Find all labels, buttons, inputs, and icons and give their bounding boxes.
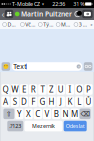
staticText: A [3,96,8,107]
staticText: S [13,96,17,107]
staticText: R [31,84,36,95]
staticText: Text [13,62,26,71]
button[interactable]: D [20,96,28,107]
staticText: H [49,96,55,107]
staticText: W [11,84,18,95]
button[interactable]: J [57,96,65,107]
staticText: Týden [43,21,53,28]
staticText: Z [49,84,54,95]
button[interactable]: P [84,84,93,95]
button[interactable]: Conversations [1,8,13,20]
staticText: Martin Pultzner [21,10,72,18]
button[interactable]: E [20,84,28,95]
button[interactable]: H [47,96,56,107]
staticText: L [77,96,81,107]
staticText: Měsíc [61,21,71,28]
staticText: ⌫ [81,110,90,118]
button[interactable]: I [66,84,74,95]
staticText: J [60,96,62,107]
button[interactable]: .?123 [7,121,23,131]
staticText: Ů [85,96,91,107]
button[interactable]: Stickers [84,62,92,71]
staticText: T-Mobile CZ [11,0,40,8]
staticText: ⇧ [6,110,12,118]
button[interactable]: Y [15,109,24,119]
staticText: U [58,84,64,95]
button[interactable]: ⌫ [80,109,91,119]
button[interactable]: W [11,84,19,95]
button[interactable]: Včera [19,20,37,29]
button[interactable]: Dnes [1,20,19,29]
button[interactable]: L [75,96,83,107]
staticText: × [78,64,80,69]
staticText: Dnes [7,21,18,28]
staticText: Q [3,84,9,95]
staticText: 3 měs [79,21,89,28]
button[interactable]: T [38,84,47,95]
button[interactable]: O [75,84,83,95]
button[interactable]: A [1,96,10,107]
button[interactable]: Silent mode [74,10,81,18]
staticText: G [39,96,45,107]
button[interactable]: ⇧ [3,109,14,119]
button[interactable]: K [66,96,74,107]
button[interactable]: U [57,84,65,95]
staticText: T [40,84,44,95]
button[interactable]: N [61,109,70,119]
staticText: P [86,84,91,95]
button[interactable]: F [29,96,37,107]
button[interactable]: S [11,96,19,107]
button[interactable]: Emoji [2,62,10,71]
button[interactable]: V [43,109,51,119]
button[interactable]: Ů [84,96,93,107]
button[interactable]: C [34,109,42,119]
staticText: C [35,108,40,119]
staticText: ‹ [1,8,4,20]
staticText: Odeslat [66,122,85,130]
staticText: B [54,108,59,119]
staticText: ▸ [91,22,93,27]
staticText: V [44,108,49,119]
staticText: X [26,108,31,119]
staticText: 22:36 [52,0,65,8]
button[interactable]: G [38,96,47,107]
staticText: ▾ [40,2,44,6]
staticText: Y [17,108,22,119]
staticText: K [67,96,72,107]
staticText: Včera [25,21,35,28]
button[interactable]: Camera [82,10,93,18]
staticText: N [62,108,68,119]
staticText: F [31,96,35,107]
staticText: M [71,108,78,119]
button[interactable]: Mezerník [24,121,62,131]
button[interactable]: Měsíc [55,20,72,29]
staticText: I [68,84,71,95]
staticText: E [22,84,26,95]
button[interactable]: B [52,109,60,119]
button[interactable]: Odeslat [64,121,87,131]
button[interactable]: Týden [37,20,55,29]
staticText: .?123 [9,122,21,130]
staticText: O [76,84,82,95]
button[interactable]: Z [47,84,56,95]
staticText: D [21,96,27,107]
button[interactable]: 3 měs [73,20,90,29]
staticText: Mezerník [32,122,55,130]
button[interactable]: Q [1,84,10,95]
button[interactable]: R [29,84,37,95]
button[interactable]: M [70,109,79,119]
staticText: 31 % [73,0,84,8]
button[interactable]: X [24,109,33,119]
